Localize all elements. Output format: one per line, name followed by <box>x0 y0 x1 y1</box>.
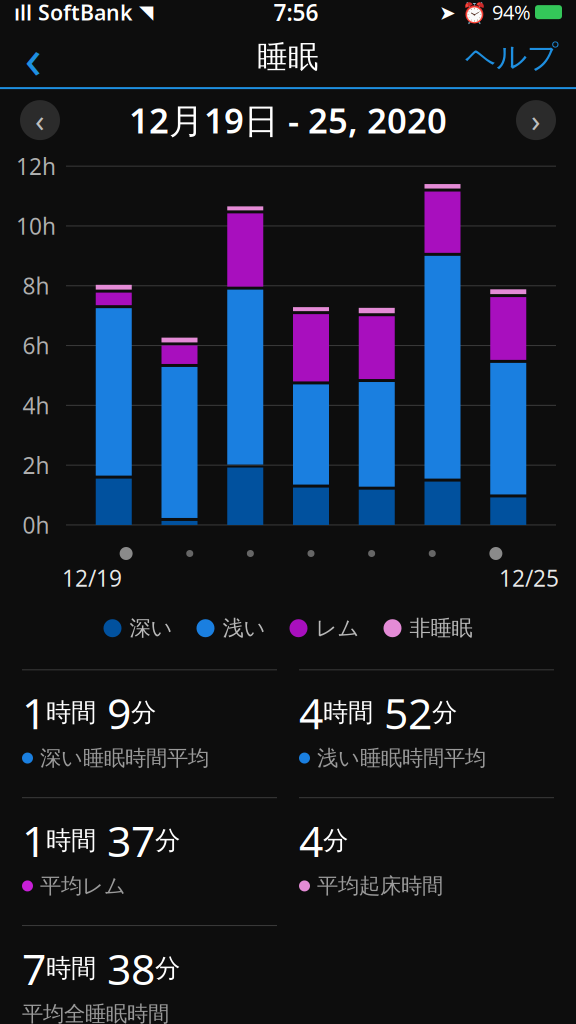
staticText: 12月19日 - 25, 2020 <box>129 97 447 143</box>
staticText: 平均全睡眠時間 <box>22 1001 169 1024</box>
staticText: ◥ <box>133 1 153 23</box>
staticText: 12h <box>16 151 56 181</box>
staticText: ‹ <box>24 20 41 94</box>
staticText: 1 <box>22 812 46 869</box>
button[interactable]: ヘルプ <box>453 30 570 84</box>
staticText: 浅い <box>222 615 265 641</box>
staticText: 7 <box>22 940 46 997</box>
staticText: 時間 <box>323 697 373 728</box>
staticText: 4 <box>299 684 323 741</box>
staticText: ヘルプ <box>465 38 558 76</box>
staticText: 52 <box>373 684 432 741</box>
staticText: 深い <box>129 615 172 641</box>
staticText: 分 <box>131 697 156 728</box>
staticText: 平均起床時間 <box>317 873 443 899</box>
staticText: 1 <box>22 684 46 741</box>
staticText: 2h <box>22 450 49 480</box>
staticText: 10h <box>16 211 56 241</box>
staticText: 0h <box>22 510 49 540</box>
staticText: 4 <box>299 812 323 869</box>
staticText: › <box>531 100 541 140</box>
staticText: 分 <box>155 953 180 984</box>
staticText: 7:56 <box>273 0 318 27</box>
button[interactable]: Back <box>6 30 60 84</box>
staticText: 38 <box>96 940 155 997</box>
staticText: 深い睡眠時間平均 <box>40 745 209 771</box>
staticText: 平均レム <box>40 873 126 899</box>
staticText: 9 <box>96 684 131 741</box>
staticText: 睡眠 <box>257 38 319 76</box>
staticText: ‹ <box>35 100 45 140</box>
staticText: 分 <box>155 825 180 856</box>
staticText: 12/19 <box>62 563 122 593</box>
button[interactable]: Next week <box>516 100 556 140</box>
staticText: 4h <box>22 390 49 420</box>
staticText: 時間 <box>46 697 96 728</box>
staticText: 37 <box>96 812 155 869</box>
staticText: 時間 <box>46 825 96 856</box>
staticText: 分 <box>432 697 457 728</box>
staticText: ➤ ⏰ 94% <box>439 0 531 25</box>
staticText: 6h <box>22 330 49 361</box>
staticText: ıll SoftBank <box>14 0 133 26</box>
staticText: 浅い睡眠時間平均 <box>317 745 486 771</box>
button[interactable]: Previous week <box>20 100 60 140</box>
staticText: レム <box>315 615 359 641</box>
staticText: 非睡眠 <box>409 615 472 641</box>
staticText: 分 <box>323 825 348 856</box>
staticText: 8h <box>22 271 49 301</box>
staticText: 12/25 <box>499 563 559 593</box>
staticText: 時間 <box>46 953 96 984</box>
